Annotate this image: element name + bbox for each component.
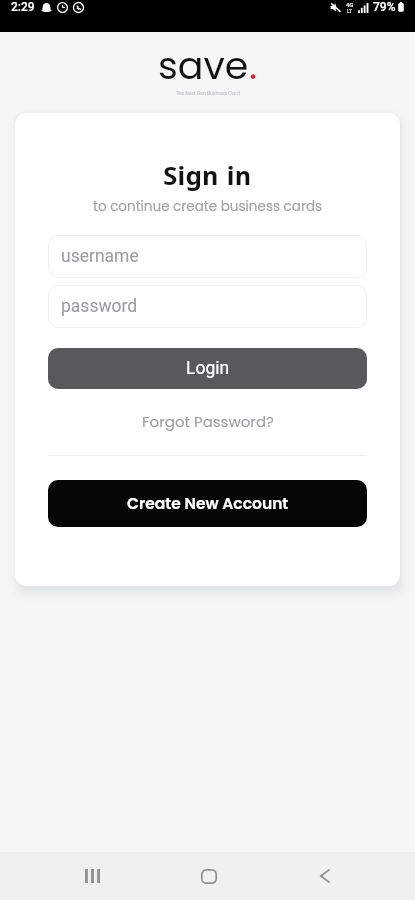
- staticText: Sign in: [163, 161, 252, 190]
- button[interactable]: Back: [292, 852, 357, 900]
- staticText: 79%: [373, 0, 396, 14]
- button[interactable]: Create New Account: [48, 480, 367, 527]
- staticText: LT: [347, 8, 353, 14]
- staticText: password: [61, 296, 138, 317]
- staticText: The Next Gen Business Card: [176, 90, 240, 96]
- button[interactable]: Recent apps: [60, 852, 125, 900]
- staticText: .: [249, 39, 257, 92]
- staticText: username: [61, 246, 139, 267]
- button[interactable]: Forgot Password?: [142, 411, 274, 432]
- staticText: 2:29: [11, 0, 35, 14]
- button[interactable]: Login: [48, 348, 367, 389]
- button[interactable]: username: [48, 235, 367, 278]
- staticText: save: [158, 39, 249, 92]
- staticText: to continue create business cards: [93, 197, 323, 216]
- button[interactable]: password: [48, 285, 367, 328]
- staticText: Create New Account: [127, 493, 289, 515]
- staticText: 4G: [346, 1, 354, 8]
- staticText: Login: [186, 358, 230, 379]
- button[interactable]: Home: [176, 852, 241, 900]
